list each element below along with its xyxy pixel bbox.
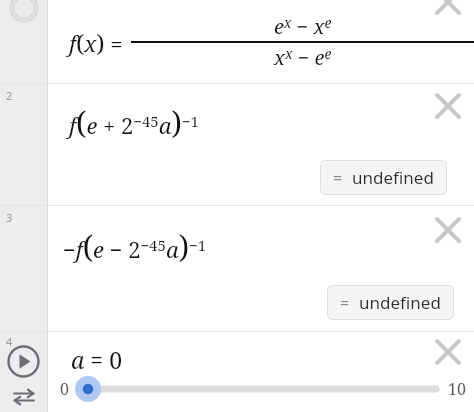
button[interactable]: 4 (0, 332, 474, 412)
staticText: ex − xe (274, 13, 332, 40)
button[interactable]: = (320, 160, 447, 195)
staticText: 0 (60, 378, 69, 400)
button[interactable]: 3 (0, 206, 474, 331)
staticText: 4 (6, 334, 13, 349)
button[interactable]: 2 (0, 84, 474, 205)
staticText: = (333, 167, 343, 189)
button[interactable]: Expression color (0, 0, 47, 83)
button[interactable]: Change animation direction (11, 384, 37, 410)
staticText: 10 (448, 378, 466, 400)
staticText: −f(e − 2−45a)−1 (63, 226, 207, 267)
staticText: undefined (359, 291, 441, 314)
button[interactable]: Play slider animation (7, 345, 40, 378)
button[interactable] (75, 376, 439, 402)
staticText: a = 0 (71, 344, 122, 375)
staticText: f(e + 2−45a)−1 (69, 102, 199, 143)
staticText: f(x) = (69, 26, 129, 59)
staticText: = (340, 292, 350, 314)
button[interactable]: Delete expression (432, 336, 464, 368)
button[interactable]: Delete expression (432, 214, 464, 246)
button[interactable]: Delete expression (432, 0, 464, 18)
staticText: undefined (352, 166, 434, 189)
button[interactable]: = (327, 285, 454, 320)
button[interactable]: Delete expression (432, 90, 464, 122)
staticText: 3 (6, 210, 13, 225)
staticText: xx − ee (274, 44, 332, 71)
staticText: 2 (6, 88, 13, 103)
button[interactable]: Expression color (0, 0, 474, 83)
